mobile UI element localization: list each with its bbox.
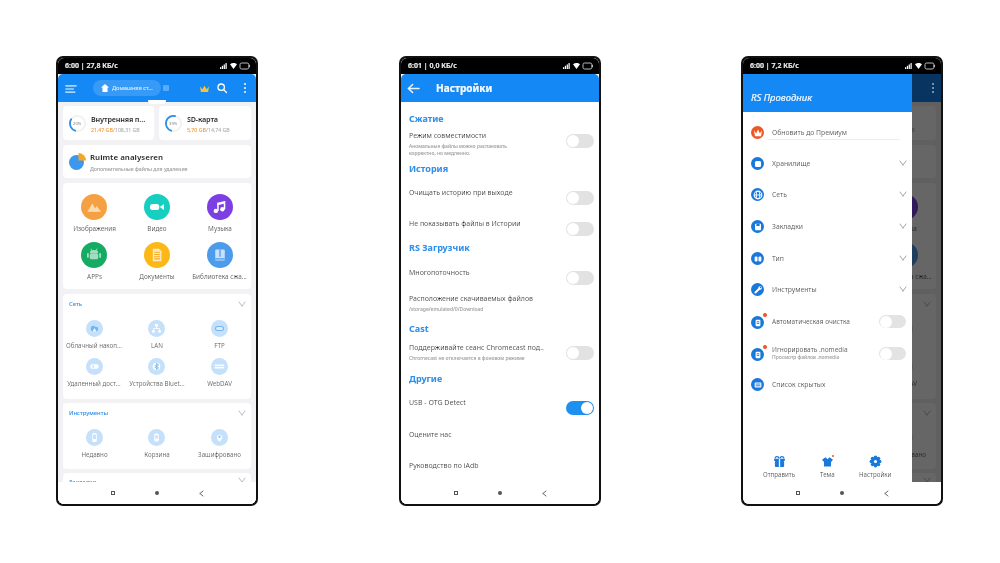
staticText: Список скрытых [772,380,906,389]
button[interactable]: Изображения [748,194,810,233]
button[interactable]: Инструменты [63,403,251,422]
staticText: Ruimte analyseren [90,152,163,163]
button[interactable]: Back [405,80,422,97]
button[interactable]: Back [536,485,552,501]
button[interactable]: Библиотека сжа... [188,242,251,281]
button[interactable]: USB - OTG Detect [401,398,599,414]
staticText: LAN [151,341,163,349]
button[interactable]: Многопоточность [401,268,599,284]
button[interactable]: Удаленный дост... [63,358,125,387]
button[interactable]: Музыка [188,194,251,233]
button[interactable]: Устройства Bluet... [810,358,873,387]
button[interactable]: Recents [448,485,464,501]
button[interactable]: FTP [873,320,936,349]
button[interactable]: Toggle [566,134,594,148]
button[interactable]: Тема [814,453,841,480]
button[interactable]: Обновить до Премиум [743,122,912,142]
button[interactable]: 39% [159,106,251,140]
button[interactable]: Устройства Bluet... [125,358,188,387]
button[interactable]: Документы [125,242,188,281]
staticText: Корзина [829,450,855,458]
button[interactable]: Toggle [566,401,594,415]
button[interactable]: Домашняя ст... [778,80,846,96]
button[interactable]: Toggle [879,347,906,360]
button[interactable]: Видео [125,194,188,233]
button[interactable]: Очищать историю при выходе [401,188,599,204]
button[interactable]: Не показывать файлы в Истории [401,219,599,235]
button[interactable]: Инструменты [743,279,912,299]
button[interactable]: More options [238,81,252,95]
button[interactable]: 39% [844,106,936,140]
button[interactable]: Toggle [566,346,594,360]
button[interactable]: Корзина [810,429,873,458]
button[interactable]: Корзина [125,429,188,458]
button[interactable]: Отправить [757,453,802,480]
button[interactable]: 20% [63,106,154,140]
button[interactable]: WebDAV [188,358,251,387]
button[interactable]: Home [149,485,165,501]
staticText: Недавно [766,450,793,458]
button[interactable]: Список скрытых [743,374,912,394]
button[interactable]: LAN [125,320,188,349]
button[interactable]: Облачный накоп... [63,320,125,349]
button[interactable]: Back [878,485,894,501]
button[interactable]: APPs [63,242,125,281]
button[interactable]: Руководство по iAdb [401,461,599,477]
button[interactable]: Инструменты [748,403,936,422]
button[interactable]: Search [899,80,915,96]
button[interactable]: WebDAV [873,358,936,387]
button[interactable]: Облачный накоп... [748,320,810,349]
button[interactable]: Поддерживайте сеанс Chromecast под.. [401,343,599,362]
button[interactable]: Режим совместимости [401,131,599,157]
button[interactable]: APPs [748,242,810,281]
button[interactable]: Recents [105,485,121,501]
button[interactable]: Недавно [63,429,125,458]
button[interactable]: FTP [188,320,251,349]
button[interactable]: Menu [62,80,79,97]
button[interactable]: Зашифровано [873,429,936,458]
button[interactable]: Музыка [873,194,936,233]
button[interactable]: Домашняя ст... [93,80,161,96]
staticText: APPs [87,272,102,281]
button[interactable]: Ruimte analyseren [748,145,936,178]
button[interactable]: Menu [747,80,764,97]
button[interactable]: Home [834,485,850,501]
button[interactable]: Удаленный дост... [748,358,810,387]
staticText: Тип [772,254,900,263]
button[interactable]: Игнорировать .nomedia [743,343,912,363]
button[interactable]: Toggle [566,271,594,285]
button[interactable]: Оцените нас [401,430,599,446]
button[interactable]: Home [492,485,508,501]
button[interactable]: Search [214,80,230,96]
button[interactable]: Premium [196,80,212,96]
button[interactable]: Настройки [853,453,898,480]
button[interactable]: Ruimte analyseren [63,145,251,178]
button[interactable]: Расположение скачиваемых файлов [401,294,599,313]
button[interactable]: Тип [743,248,912,268]
button[interactable]: Сеть [63,294,251,313]
button[interactable]: Tabs [159,81,173,95]
button[interactable]: Сеть [748,294,936,313]
button[interactable]: Toggle [566,191,594,205]
button[interactable]: More options [923,81,937,95]
button[interactable]: Зашифровано [188,429,251,458]
staticText: Устройства Bluet... [814,379,870,387]
button[interactable]: Хранилище [743,153,912,173]
button[interactable]: Toggle [566,222,594,236]
button[interactable]: Недавно [748,429,810,458]
button[interactable]: 20% [748,106,839,140]
button[interactable]: Сеть [743,184,912,204]
button[interactable]: Recents [790,485,806,501]
button[interactable]: Закладки [743,216,912,236]
button[interactable]: Toggle [879,315,906,328]
staticText: Изображения [73,224,116,233]
button[interactable]: LAN [810,320,873,349]
button[interactable]: Автоматическая очистка [743,311,912,331]
button[interactable]: Библиотека сжа... [873,242,936,281]
button[interactable]: Изображения [63,194,125,233]
button[interactable]: Back [193,485,209,501]
